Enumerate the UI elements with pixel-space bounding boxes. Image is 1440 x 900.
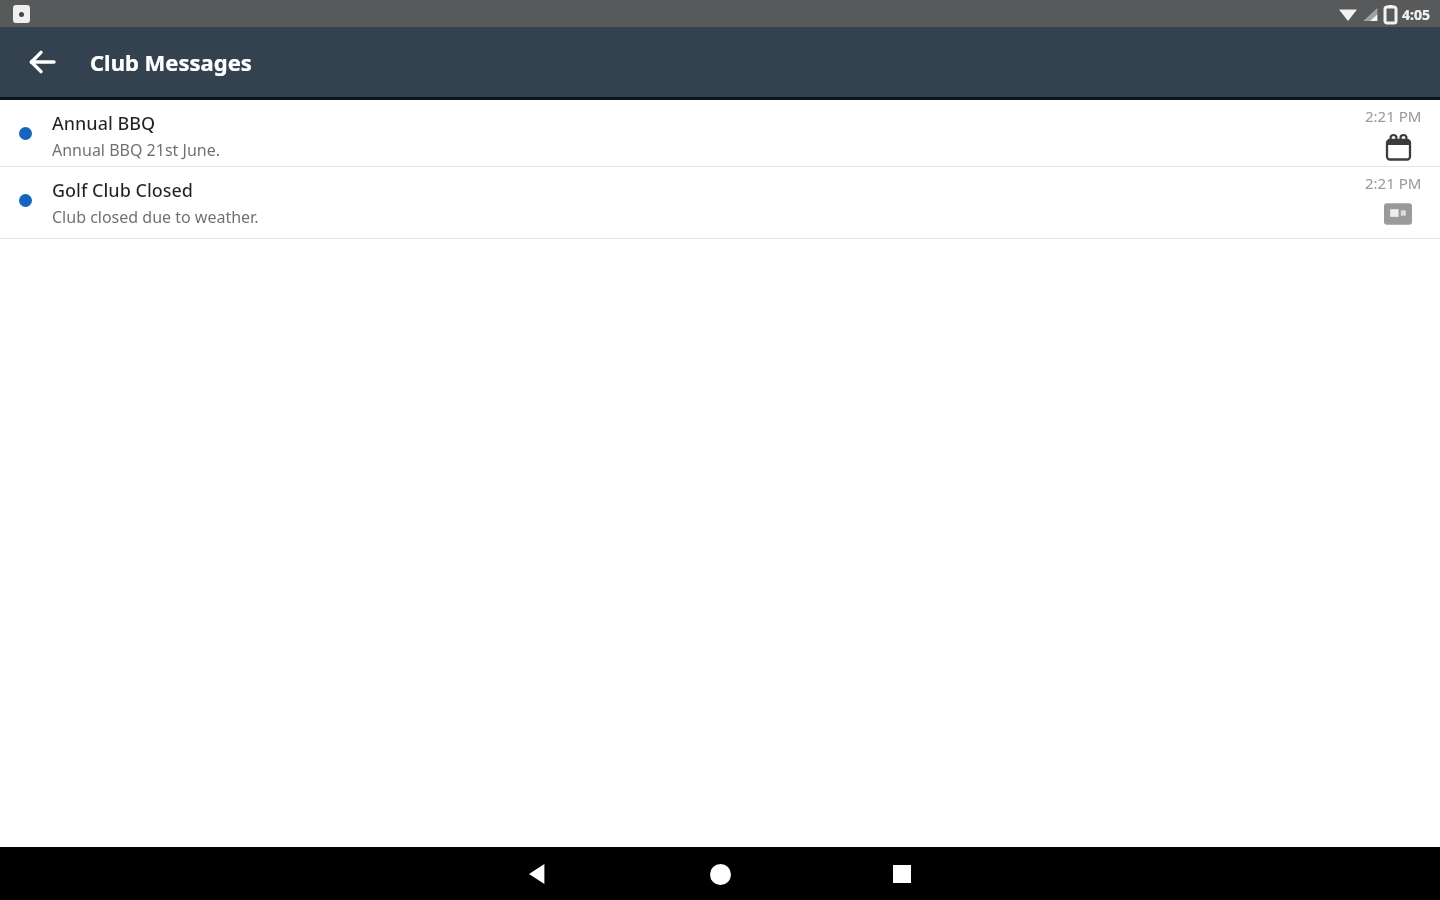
staticText: 4:05 [1402, 5, 1430, 24]
staticText: Golf Club Closed [52, 178, 193, 203]
button[interactable] [878, 850, 926, 898]
button[interactable] [18, 38, 66, 86]
staticText: Annual BBQ 21st June. [52, 139, 220, 161]
button[interactable]: Golf Club Closed [0, 167, 1440, 239]
staticText: 2:21 PM [1365, 106, 1422, 126]
staticText: Annual BBQ [52, 111, 156, 136]
button[interactable]: Annual BBQ [0, 100, 1440, 167]
button[interactable] [514, 850, 562, 898]
button[interactable] [696, 850, 744, 898]
staticText: 2:21 PM [1365, 173, 1422, 193]
staticText: Club closed due to weather. [52, 206, 259, 228]
staticText: Club Messages [90, 47, 252, 77]
